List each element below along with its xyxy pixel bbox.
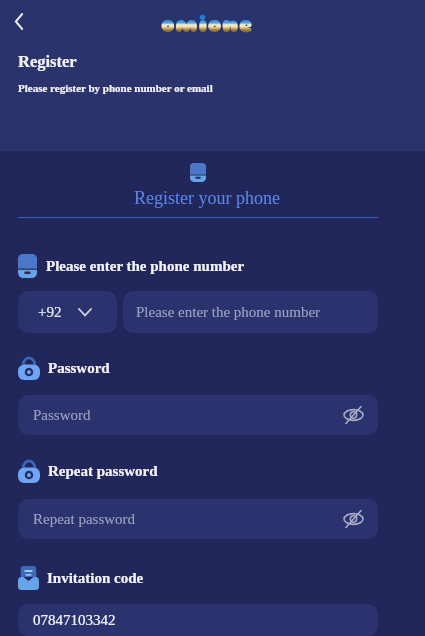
staticText: Please enter the phone number [46, 258, 245, 275]
button[interactable]: Register your phone [18, 151, 378, 218]
button[interactable]: Repeat password [18, 499, 378, 539]
button[interactable]: Please enter the phone number [123, 291, 378, 333]
staticText: Invitation code [47, 570, 144, 587]
staticText: Password [33, 407, 344, 424]
button[interactable]: +92 [18, 291, 117, 333]
staticText: Register your phone [134, 188, 280, 208]
button[interactable] [6, 8, 32, 34]
staticText: Register [18, 52, 77, 70]
staticText: Please enter the phone number [136, 304, 321, 321]
staticText: +92 [38, 304, 62, 321]
button[interactable]: 07847103342 [18, 604, 378, 636]
staticText: Password [48, 360, 110, 377]
staticText: omione [161, 10, 253, 39]
staticText: Repeat password [33, 511, 344, 528]
staticText: Repeat password [48, 463, 158, 480]
staticText: 07847103342 [33, 612, 116, 629]
staticText: Please register by phone number or email [18, 82, 213, 94]
button[interactable]: Password [18, 395, 378, 435]
